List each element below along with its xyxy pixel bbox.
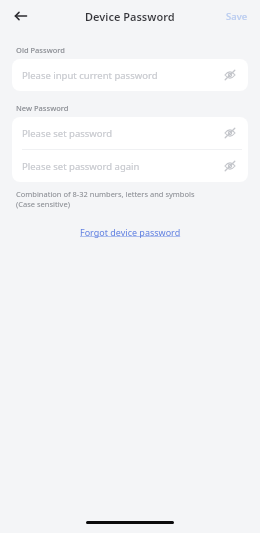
button[interactable]: Back <box>8 3 34 29</box>
button[interactable]: Show password <box>218 154 242 178</box>
staticText: Please set password again <box>22 160 218 173</box>
button[interactable]: Show password <box>218 121 242 145</box>
staticText: Save <box>226 10 248 23</box>
staticText: (Case sensitive) <box>16 199 70 209</box>
staticText: Combination of 8-32 numbers, letters and… <box>16 189 195 199</box>
button[interactable]: Forgot device password <box>74 223 187 241</box>
staticText: New Password <box>16 103 69 113</box>
staticText: Forgot device password <box>80 226 181 238</box>
staticText: Old Password <box>16 45 65 55</box>
staticText: Please input current password <box>22 69 218 82</box>
button[interactable]: Show password <box>218 63 242 87</box>
staticText: Please set password <box>22 127 218 140</box>
staticText: Device Password <box>85 9 175 24</box>
button[interactable]: Save <box>214 4 260 29</box>
